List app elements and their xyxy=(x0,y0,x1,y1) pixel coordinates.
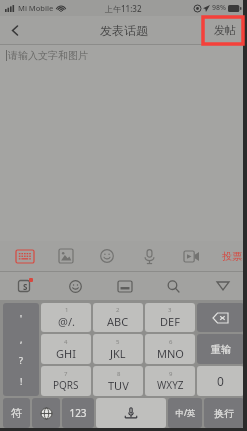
staticText: 投票 xyxy=(222,250,242,263)
button[interactable]: 发帖 xyxy=(209,20,241,40)
button[interactable]: 9 xyxy=(145,366,195,396)
button[interactable]: 1 xyxy=(41,303,91,332)
staticText: GHI xyxy=(56,346,76,361)
staticText: 98% xyxy=(212,3,226,13)
button[interactable]: 6 xyxy=(145,334,195,364)
button[interactable]: 换行 xyxy=(204,398,244,428)
button[interactable]: 7 xyxy=(41,366,91,396)
staticText: WXYZ xyxy=(157,378,184,392)
staticText: ? xyxy=(19,354,23,366)
staticText: 中/英 xyxy=(175,407,196,419)
button[interactable]: 0 xyxy=(197,366,244,396)
staticText: 6 xyxy=(169,338,173,346)
button[interactable]: 符 xyxy=(3,398,30,428)
button[interactable]: Clipboard xyxy=(100,272,149,300)
button[interactable]: Hide keyboard xyxy=(198,272,247,300)
staticText: 换行 xyxy=(214,407,234,420)
staticText: 7 xyxy=(64,370,68,378)
button[interactable]: 3 xyxy=(145,303,195,332)
staticText: MNO xyxy=(157,346,184,361)
staticText: 123 xyxy=(69,406,87,420)
staticText: ' xyxy=(20,312,23,324)
button[interactable]: 8 xyxy=(93,366,143,396)
staticText: 5 xyxy=(116,338,120,346)
button[interactable]: Video xyxy=(180,245,202,267)
staticText: ! xyxy=(20,375,23,387)
button[interactable]: Space / voice input xyxy=(96,398,166,428)
staticText: TUV xyxy=(108,378,129,393)
button[interactable]: Search xyxy=(149,272,198,300)
button[interactable]: 中/英 xyxy=(168,398,202,428)
staticText: , xyxy=(20,333,23,345)
staticText: 重输 xyxy=(211,343,231,356)
staticText: 8 xyxy=(117,370,121,378)
staticText: 发表话题 xyxy=(100,23,148,38)
staticText: 9 xyxy=(169,370,173,378)
button[interactable]: 投票 xyxy=(219,247,245,266)
button[interactable]: 2 xyxy=(93,303,143,332)
staticText: 符 xyxy=(11,406,22,420)
button[interactable]: Emoji xyxy=(96,245,118,267)
button[interactable]: ' xyxy=(3,303,39,396)
staticText: 3 xyxy=(168,306,172,314)
button[interactable]: 4 xyxy=(41,334,91,364)
staticText: PQRS xyxy=(53,378,79,392)
staticText: 发帖 xyxy=(214,23,236,37)
staticText: S xyxy=(23,281,28,292)
staticText: @/. xyxy=(58,314,75,329)
staticText: ABC xyxy=(107,314,129,329)
staticText: 请输入文字和图片 xyxy=(8,49,88,62)
button[interactable]: 重输 xyxy=(197,334,244,364)
button[interactable]: Switch language xyxy=(32,398,60,428)
staticText: Mi Mobile xyxy=(18,3,54,13)
button[interactable]: Back xyxy=(0,16,30,44)
button[interactable]: 5 xyxy=(93,334,143,364)
staticText: 2 xyxy=(116,306,120,314)
button[interactable]: Voice xyxy=(138,245,160,267)
staticText: DEF xyxy=(160,314,180,329)
button[interactable]: Backspace xyxy=(197,303,244,332)
button[interactable]: 123 xyxy=(62,398,94,428)
staticText: 0 xyxy=(217,373,224,389)
staticText: JKL xyxy=(110,346,126,361)
button[interactable]: Emoji panel xyxy=(50,272,100,300)
button[interactable]: 请输入文字和图片 xyxy=(0,45,247,241)
button[interactable]: Sogou input settings xyxy=(0,272,50,300)
staticText: 1 xyxy=(65,306,69,314)
staticText: 上午11:32 xyxy=(105,3,142,14)
staticText: 4 xyxy=(64,338,68,346)
button[interactable]: Keyboard xyxy=(14,245,36,267)
button[interactable]: Image xyxy=(55,245,77,267)
